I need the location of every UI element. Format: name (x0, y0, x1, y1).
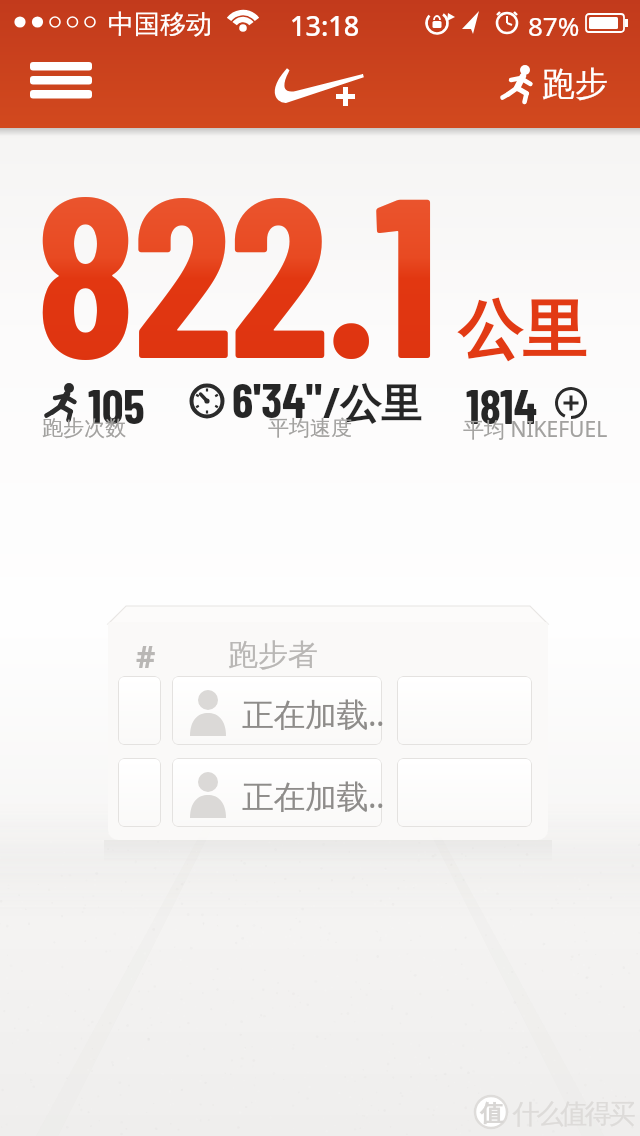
staticText: 值 (480, 1099, 503, 1128)
staticText: 1814 (466, 376, 537, 434)
staticText: /公里 (323, 374, 423, 430)
staticText: 105 (88, 376, 145, 434)
staticText: 公里 (458, 290, 586, 371)
staticText: 13:18 (290, 7, 360, 44)
button[interactable] (262, 58, 378, 110)
staticText: 平均速度 (268, 415, 352, 441)
button[interactable]: 正在加载.. (108, 676, 548, 745)
staticText: # (136, 636, 156, 677)
button[interactable] (18, 56, 104, 104)
staticText: 6'34" (232, 370, 323, 428)
staticText: 跑步次数 (42, 415, 126, 441)
staticText: 跑步者 (228, 636, 318, 674)
staticText: 什么值得买 (514, 1097, 634, 1131)
button[interactable]: 正在加载.. (108, 758, 548, 827)
staticText: 正在加载.. (242, 774, 385, 818)
staticText: 822.1 (36, 133, 437, 403)
staticText: 跑步 (542, 63, 608, 105)
staticText: 中国移动 (108, 8, 212, 41)
button[interactable]: 跑步 (502, 58, 608, 110)
staticText: 平均 NIKEFUEL (463, 415, 608, 444)
staticText: 87% (528, 8, 580, 43)
staticText: 正在加载.. (242, 692, 385, 736)
